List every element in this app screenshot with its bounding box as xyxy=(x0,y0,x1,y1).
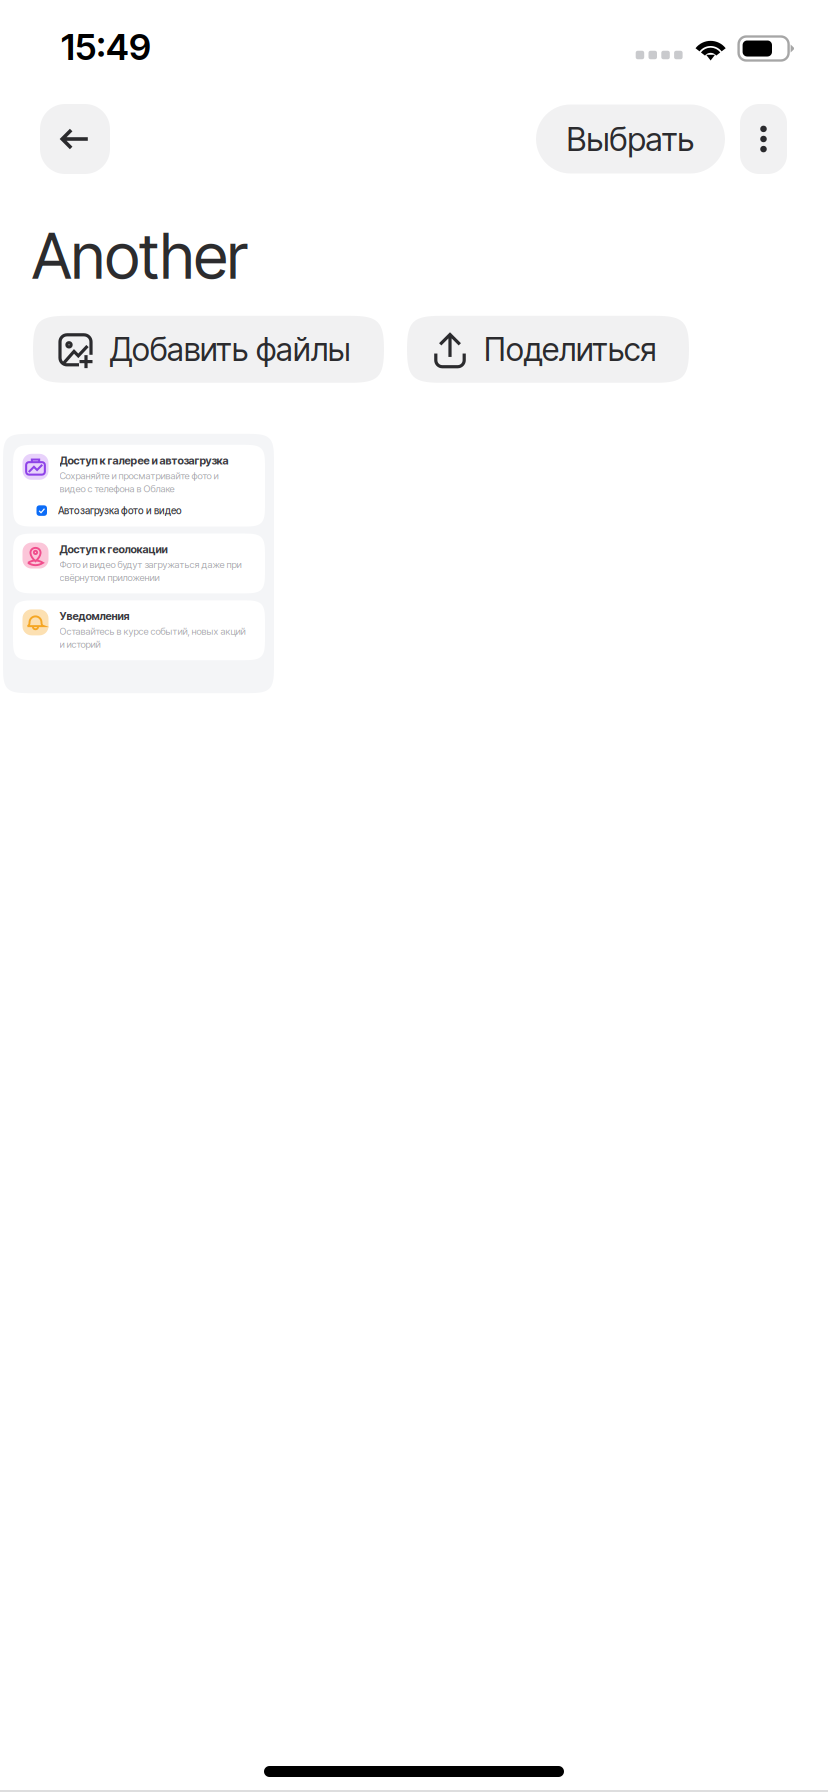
staticText: Доступ к геолокации xyxy=(59,543,167,556)
staticText: Уведомления xyxy=(59,609,129,623)
staticText: Автозагрузка фото и видео xyxy=(58,505,182,516)
staticText: 15:49 xyxy=(61,25,151,69)
staticText: Another xyxy=(32,218,247,294)
button[interactable]: Поделиться xyxy=(407,316,689,383)
button[interactable]: Назад xyxy=(40,104,110,174)
staticText: Сохраняйте и просматривайте фото и xyxy=(59,470,218,482)
staticText: Добавить файлы xyxy=(110,330,351,369)
staticText: Поделиться xyxy=(484,330,656,369)
staticText: Выбрать xyxy=(566,119,694,159)
button[interactable]: Ещё xyxy=(740,104,787,174)
staticText: Доступ к галерее и автозагрузка xyxy=(59,454,228,467)
staticText: и историй xyxy=(59,639,100,650)
button[interactable]: Добавить файлы xyxy=(33,316,384,383)
staticText: видео с телефона в Облаке xyxy=(59,483,174,495)
staticText: Оставайтесь в курсе событий, новых акций xyxy=(59,626,245,637)
staticText: свёрнутом приложении xyxy=(59,572,159,583)
staticText: Фото и видео будут загружаться даже при xyxy=(59,559,241,570)
button[interactable]: Выбрать xyxy=(536,104,725,173)
